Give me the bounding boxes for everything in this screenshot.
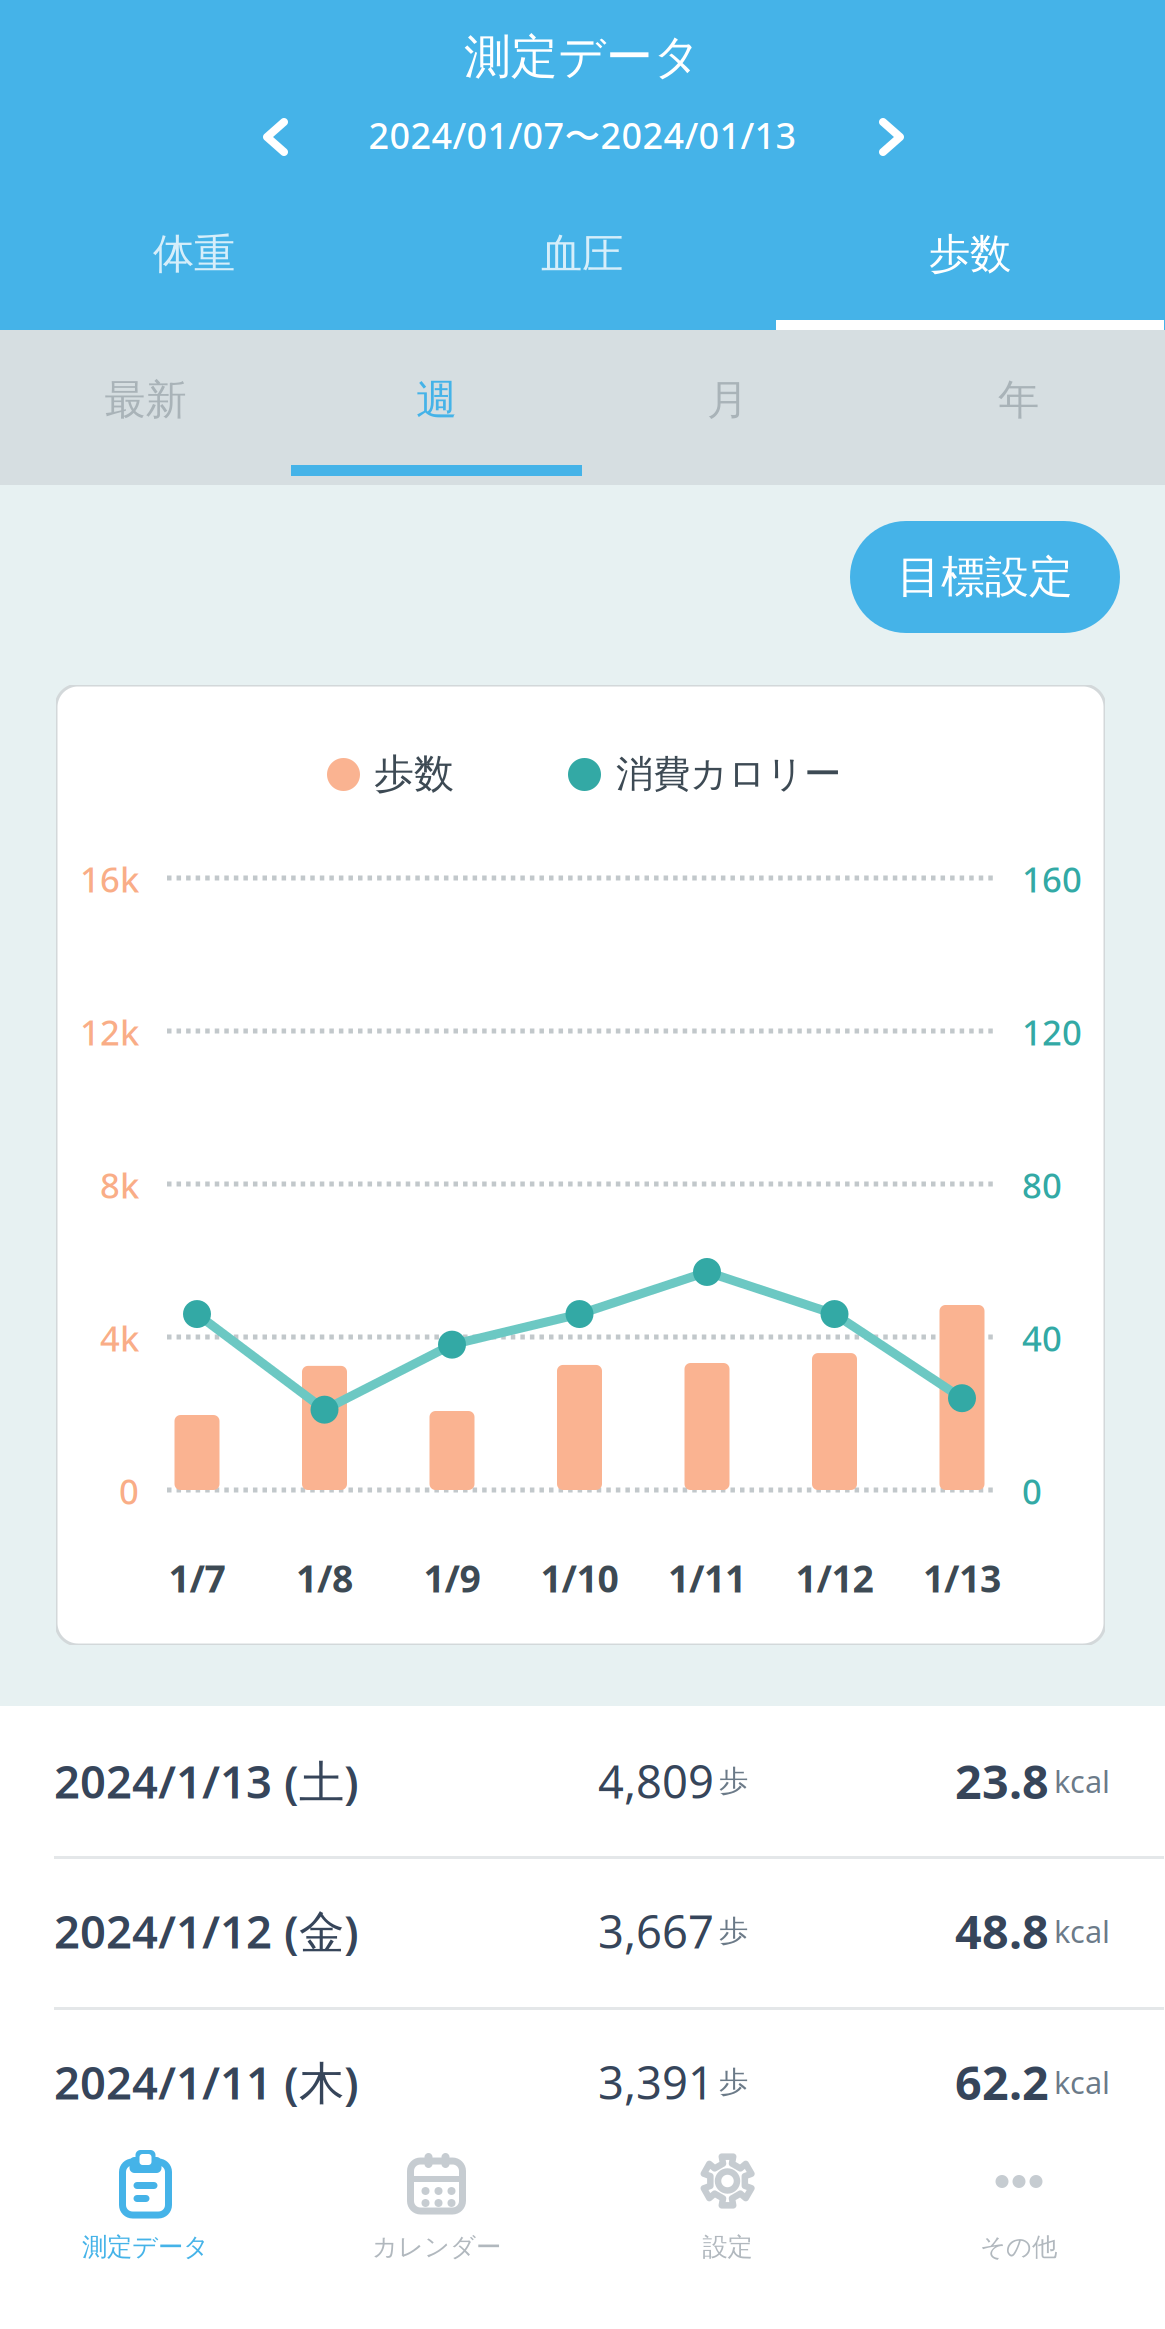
staticText: 設定 [702,2231,752,2262]
staticText: 120 [1022,1009,1082,1055]
button[interactable]: 測定データ [0,2113,291,2329]
button[interactable]: 週 [291,330,582,485]
staticText: 血圧 [541,229,623,279]
staticText: カレンダー [372,2231,501,2262]
staticText: 消費カロリー [616,751,841,797]
button[interactable]: 2024/1/11 (木) [0,2007,1165,2113]
staticText: 62.2 [955,2051,1049,2113]
staticText: 2024/1/11 (木) [54,2052,359,2112]
staticText: 体重 [153,229,235,279]
staticText: 2024/01/07〜2024/01/13 [368,111,796,159]
staticText: 1/8 [296,1553,353,1603]
button[interactable]: 最新 [0,330,291,485]
staticText: kcal [1054,1911,1110,1951]
button[interactable]: 月 [582,330,873,485]
button[interactable]: その他 [873,2113,1164,2329]
button[interactable]: 2024/1/13 (土) [0,1706,1165,1856]
staticText: 歩 [719,2064,748,2100]
staticText: その他 [980,2231,1057,2262]
staticText: kcal [1054,1761,1110,1801]
staticText: 2024/1/12 (金) [54,1901,359,1961]
staticText: 測定データ [464,28,701,86]
staticText: 最新 [104,375,186,425]
staticText: 80 [1022,1162,1062,1208]
staticText: 23.8 [955,1750,1049,1812]
staticText: 1/12 [795,1553,873,1603]
button[interactable]: 次の週 [850,97,930,177]
button[interactable]: 2024/1/12 (金) [0,1856,1165,2007]
staticText: 16k [80,856,139,902]
staticText: 0 [1022,1468,1042,1514]
staticText: 1/10 [540,1553,618,1603]
staticText: 測定データ [82,2231,209,2262]
button[interactable]: 血圧 [388,190,776,330]
staticText: 3,391 [598,2052,714,2112]
staticText: kcal [1054,2062,1110,2102]
staticText: 3,667 [598,1901,714,1961]
staticText: 12k [80,1009,139,1055]
button[interactable]: 設定 [582,2113,873,2329]
staticText: 月 [707,375,748,425]
staticText: 4k [100,1315,139,1361]
button[interactable]: 体重 [0,190,388,330]
staticText: 1/9 [423,1553,480,1603]
staticText: 4,809 [598,1751,714,1811]
staticText: 歩 [719,1913,748,1949]
staticText: 目標設定 [897,550,1073,604]
staticText: 40 [1022,1315,1062,1361]
button[interactable]: 目標設定 [850,521,1120,633]
staticText: 週 [416,375,457,425]
staticText: 2024/1/13 (土) [54,1751,359,1811]
staticText: 1/13 [923,1553,1001,1603]
staticText: 0 [119,1468,139,1514]
staticText: 1/7 [168,1553,225,1603]
button[interactable]: 年 [873,330,1164,485]
staticText: 8k [100,1162,139,1208]
button[interactable]: カレンダー [291,2113,582,2329]
staticText: 年 [998,375,1039,425]
button[interactable]: 歩数 [776,190,1164,330]
button[interactable]: 前の週 [234,97,314,177]
staticText: 160 [1022,856,1082,902]
staticText: 1/11 [668,1553,746,1603]
staticText: 歩数 [929,229,1011,279]
staticText: 48.8 [955,1900,1049,1962]
staticText: 歩数 [374,749,454,798]
staticText: 歩 [719,1763,748,1799]
